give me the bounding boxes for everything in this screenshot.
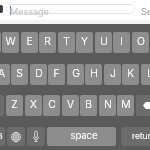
button[interactable]: Next keyboard (7, 127, 25, 146)
staticText: O (137, 35, 145, 48)
button[interactable]: W (2, 32, 19, 53)
staticText: space (70, 130, 98, 142)
staticText: S (16, 67, 23, 80)
staticText: M (121, 98, 131, 111)
button[interactable]: N (99, 95, 116, 116)
staticText: G (72, 67, 80, 80)
button[interactable]: R (39, 32, 56, 53)
button[interactable]: C (43, 95, 60, 116)
staticText: return (132, 131, 150, 141)
staticText: Z (11, 98, 18, 111)
button[interactable] (6, 4, 135, 14)
staticText: U (100, 35, 108, 48)
staticText: B (85, 98, 92, 111)
staticText: R (44, 35, 51, 48)
button[interactable]: Send (141, 6, 150, 17)
button[interactable]: E (21, 32, 38, 53)
button[interactable]: U (95, 32, 112, 53)
staticText: 123 (0, 131, 3, 141)
button[interactable]: B (80, 95, 97, 116)
staticText: X (30, 98, 37, 111)
button[interactable]: O (132, 32, 149, 53)
button[interactable]: Attach (0, 5, 3, 13)
button[interactable]: Backspace (136, 95, 150, 116)
button[interactable]: H (85, 64, 102, 85)
staticText: C (48, 98, 56, 111)
button[interactable]: G (67, 64, 84, 85)
button[interactable]: J (104, 64, 121, 85)
staticText: D (35, 67, 43, 80)
staticText: W (5, 35, 16, 48)
button[interactable]: Y (76, 32, 93, 53)
button[interactable]: M (117, 95, 134, 116)
button[interactable]: K (122, 64, 139, 85)
button[interactable]: Q (0, 32, 1, 53)
staticText: T (63, 35, 70, 48)
button[interactable]: F (48, 64, 65, 85)
staticText: K (127, 67, 134, 80)
staticText: V (67, 98, 74, 111)
staticText: A (0, 67, 5, 80)
button[interactable]: L (141, 64, 150, 85)
staticText: F (53, 67, 60, 80)
button[interactable]: Dictate (27, 127, 45, 146)
staticText: L (147, 67, 150, 80)
staticText: H (90, 67, 98, 80)
button[interactable]: return (121, 127, 150, 146)
button[interactable]: S (11, 64, 28, 85)
button[interactable]: space (47, 127, 116, 146)
staticText: Message (10, 6, 49, 17)
button[interactable]: D (30, 64, 47, 85)
button[interactable]: X (25, 95, 42, 116)
button[interactable]: Z (6, 95, 23, 116)
staticText: N (104, 98, 112, 111)
button[interactable]: 123 (0, 127, 5, 146)
staticText: J (110, 67, 116, 80)
staticText: I (120, 35, 123, 48)
button[interactable]: A (0, 64, 10, 85)
button[interactable]: V (62, 95, 79, 116)
button[interactable]: I (113, 32, 130, 53)
staticText: Y (81, 35, 88, 48)
staticText: E (26, 35, 33, 48)
button[interactable]: T (58, 32, 75, 53)
